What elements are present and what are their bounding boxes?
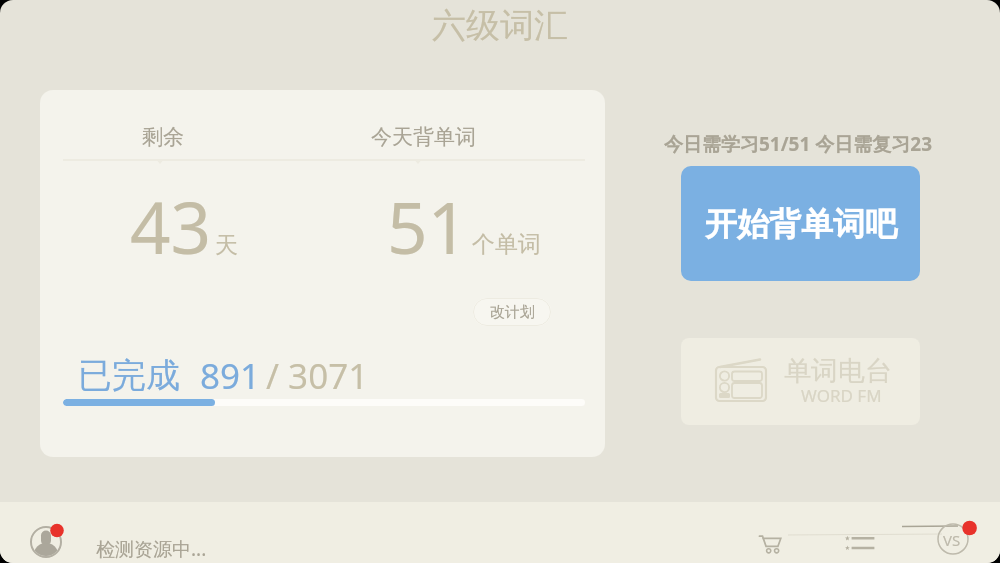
staticText: 今天背单词 <box>371 124 476 150</box>
staticText: 单词电台 <box>784 354 892 388</box>
staticText: WORD FM <box>801 384 882 407</box>
staticText: 今日需学习51/51 今日需复习23 <box>664 131 933 157</box>
staticText: 51 <box>387 178 469 275</box>
staticText: 已完成 <box>78 354 180 397</box>
staticText: 天 <box>215 231 238 260</box>
staticText: VS <box>943 530 961 550</box>
staticText: 43 <box>130 178 212 275</box>
staticText: 891 <box>200 352 261 400</box>
staticText: 改计划 <box>490 303 535 322</box>
button[interactable]: 单词电台 <box>681 338 920 425</box>
button[interactable]: Profile <box>30 524 70 563</box>
staticText: 个单词 <box>472 230 541 259</box>
button[interactable]: VS battle <box>935 518 977 560</box>
button[interactable]: 改计划 <box>473 298 551 326</box>
staticText: 六级词汇 <box>432 4 568 47</box>
button[interactable]: 开始背单词吧 <box>681 166 920 281</box>
button[interactable]: Cart <box>759 535 781 554</box>
button[interactable]: Ranking <box>845 534 875 552</box>
staticText: 检测资源中... <box>96 536 207 562</box>
staticText: / 3071 <box>266 352 369 400</box>
staticText: 开始背单词吧 <box>705 204 897 244</box>
staticText: 剩余 <box>142 124 184 150</box>
